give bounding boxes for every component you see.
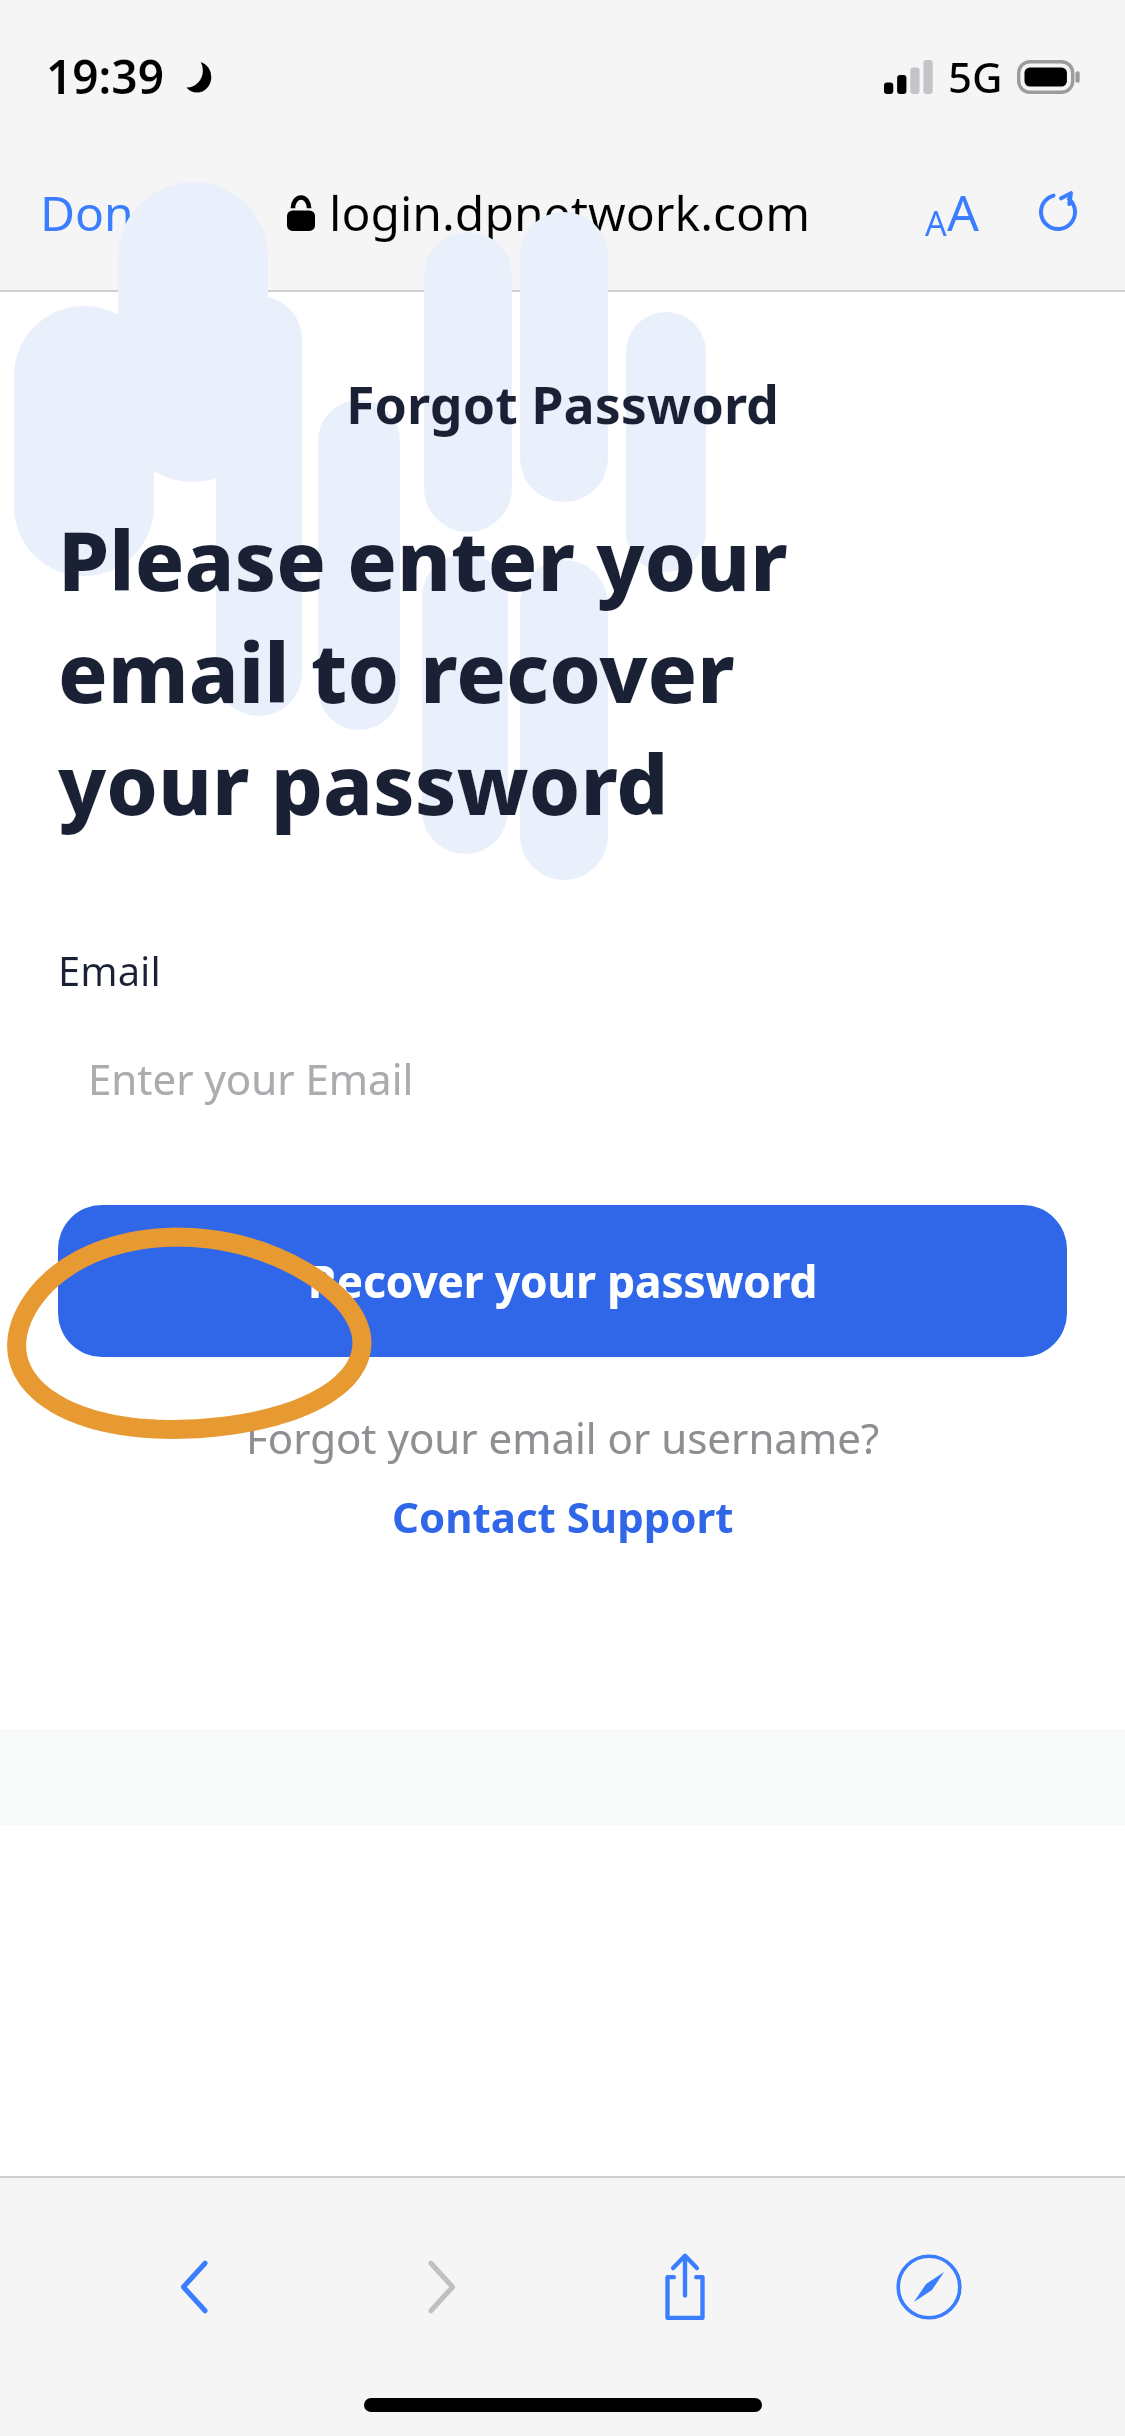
staticText: your password (58, 727, 669, 839)
staticText: 19:39 (46, 45, 164, 108)
staticText: A (925, 200, 947, 246)
staticText: email to recover (58, 615, 735, 727)
staticText: 5G (948, 48, 1003, 105)
button[interactable]: Bookmarks (864, 2222, 994, 2352)
staticText: Enter your Email (88, 1050, 414, 1107)
staticText: A (947, 178, 979, 246)
button[interactable]: Share (620, 2222, 750, 2352)
button[interactable]: Contact Support (380, 1482, 746, 1551)
button[interactable]: Recover your password (58, 1205, 1067, 1357)
button[interactable]: Enter your Email (58, 1017, 1067, 1139)
staticText: login.dpnetwork.com (329, 180, 811, 245)
staticText: Forgot your email or username? (246, 1409, 880, 1466)
button[interactable]: Text size (911, 164, 993, 260)
staticText: Done (40, 180, 161, 245)
button[interactable]: login.dpnetwork.com (273, 170, 825, 255)
staticText: Email (58, 943, 161, 997)
staticText: Forgot Password (346, 368, 779, 439)
staticText: Please enter your (58, 503, 788, 615)
button[interactable]: Reload (1013, 173, 1103, 251)
staticText: Recover your password (308, 1251, 818, 1311)
button[interactable]: Done (24, 166, 177, 259)
button[interactable]: Back (131, 2222, 261, 2352)
staticText: Contact Support (392, 1488, 734, 1545)
button[interactable]: Forward (375, 2222, 505, 2352)
